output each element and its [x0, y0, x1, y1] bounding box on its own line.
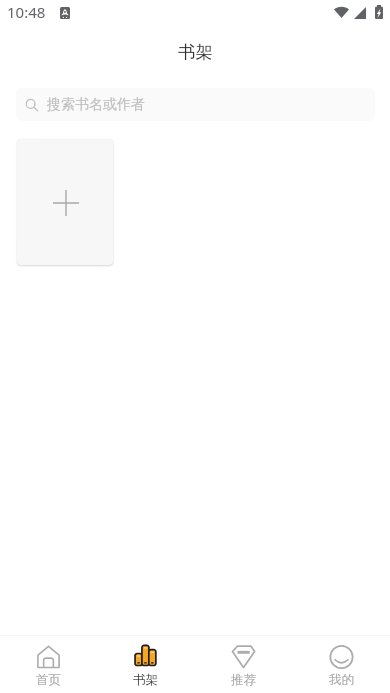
button[interactable]: 搜索: [16, 88, 375, 121]
button[interactable]: 首页: [0, 636, 97, 693]
button[interactable]: 我的: [292, 636, 390, 693]
staticText: 10:48: [7, 2, 46, 22]
staticText: 首页: [36, 672, 61, 688]
staticText: 书架: [133, 672, 158, 688]
button[interactable]: 书架: [97, 636, 194, 693]
staticText: 书架: [178, 41, 213, 63]
button[interactable]: 添加书籍: [17, 139, 113, 265]
staticText: 搜索书名或作者: [47, 96, 145, 114]
staticText: 推荐: [231, 672, 256, 688]
button[interactable]: 推荐: [194, 636, 292, 693]
staticText: 我的: [329, 672, 354, 688]
